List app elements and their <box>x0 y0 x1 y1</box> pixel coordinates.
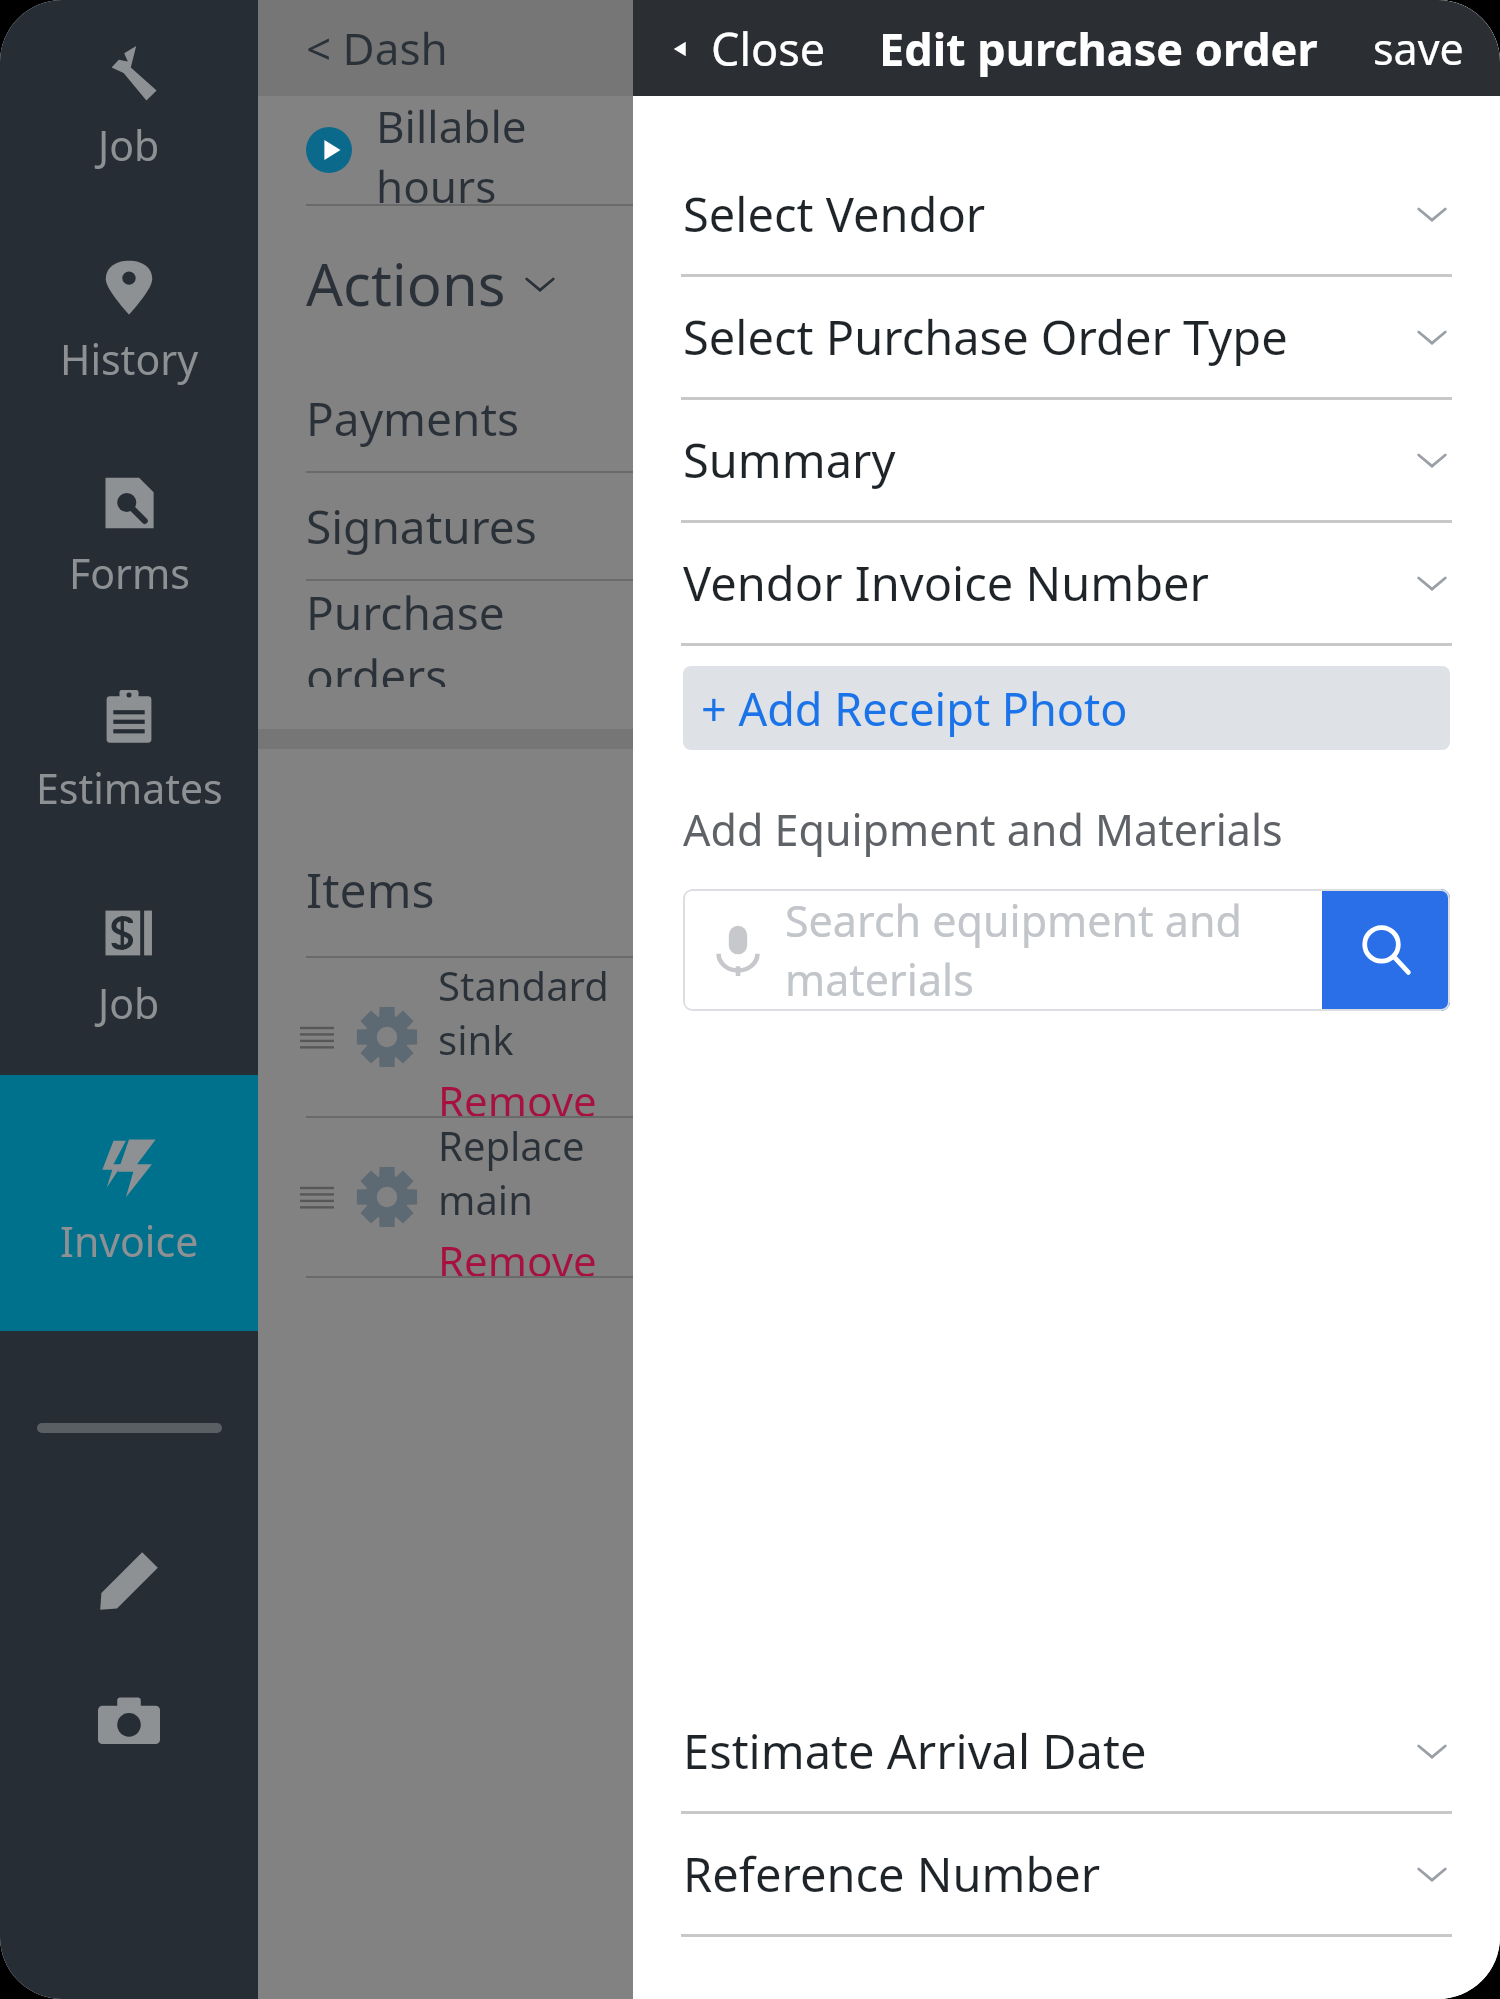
staticText: Vendor Invoice Number <box>683 551 1414 615</box>
button[interactable]: Standard sink <box>258 958 633 1116</box>
staticText: Select Vendor <box>683 182 1414 246</box>
button[interactable]: save <box>1365 9 1472 88</box>
staticText: Select Purchase Order Type <box>683 305 1414 369</box>
staticText: Items <box>306 857 435 922</box>
button[interactable]: Billable hours <box>258 96 633 204</box>
staticText: Reference Number <box>683 1842 1414 1906</box>
button[interactable]: Vendor Invoice Number <box>633 523 1500 643</box>
button[interactable]: Select Vendor <box>633 154 1500 274</box>
staticText: Summary <box>683 428 1414 492</box>
button[interactable]: Reference Number <box>633 1814 1500 1934</box>
staticText: Signatures <box>306 495 537 558</box>
button[interactable]: Invoice <box>0 1075 258 1331</box>
button[interactable]: < Dash <box>258 0 633 96</box>
button[interactable]: Actions <box>306 244 558 323</box>
staticText: < Dash <box>306 18 448 78</box>
staticText: Edit purchase order <box>879 18 1318 79</box>
staticText: Purchase orders <box>306 581 633 687</box>
button[interactable]: Job <box>0 860 258 1075</box>
button[interactable]: Search <box>1322 889 1450 1011</box>
button[interactable]: Payments <box>258 365 633 471</box>
button[interactable]: + Add Receipt Photo <box>683 666 1450 750</box>
button[interactable]: Summary <box>633 400 1500 520</box>
button[interactable]: Edit <box>0 1513 258 1648</box>
staticText: Close <box>711 18 826 79</box>
button[interactable]: Forms <box>0 430 258 645</box>
button[interactable]: Replace main <box>258 1118 633 1276</box>
button[interactable]: Close <box>661 8 832 89</box>
staticText: Remove <box>438 1072 597 1116</box>
button[interactable]: Estimates <box>0 645 258 860</box>
staticText: Estimates <box>36 760 223 816</box>
staticText: Billable hours <box>376 96 633 204</box>
staticText: History <box>60 331 199 387</box>
staticText: Standard sink <box>438 958 633 1066</box>
staticText: + Add Receipt Photo <box>701 678 1128 739</box>
staticText: Replace main <box>438 1118 633 1226</box>
button[interactable]: History <box>0 215 258 430</box>
button[interactable]: Purchase orders <box>258 581 633 687</box>
staticText: Job <box>98 117 160 173</box>
staticText: Add Equipment and Materials <box>683 800 1283 859</box>
staticText: Job <box>98 975 160 1031</box>
button[interactable]: Job <box>0 0 258 215</box>
button[interactable]: Search equipment and materials <box>683 889 1322 1011</box>
staticText: Invoice <box>60 1213 199 1269</box>
button[interactable]: Select Purchase Order Type <box>633 277 1500 397</box>
staticText: Estimate Arrival Date <box>683 1719 1414 1783</box>
staticText: Remove <box>438 1232 597 1276</box>
button[interactable]: Estimate Arrival Date <box>633 1691 1500 1811</box>
staticText: Actions <box>306 244 506 323</box>
button[interactable]: Camera <box>0 1648 258 1798</box>
staticText: Payments <box>306 387 520 450</box>
button[interactable]: Signatures <box>258 473 633 579</box>
staticText: Search equipment and materials <box>785 891 1322 1009</box>
staticText: save <box>1373 19 1464 78</box>
staticText: Forms <box>69 545 190 601</box>
